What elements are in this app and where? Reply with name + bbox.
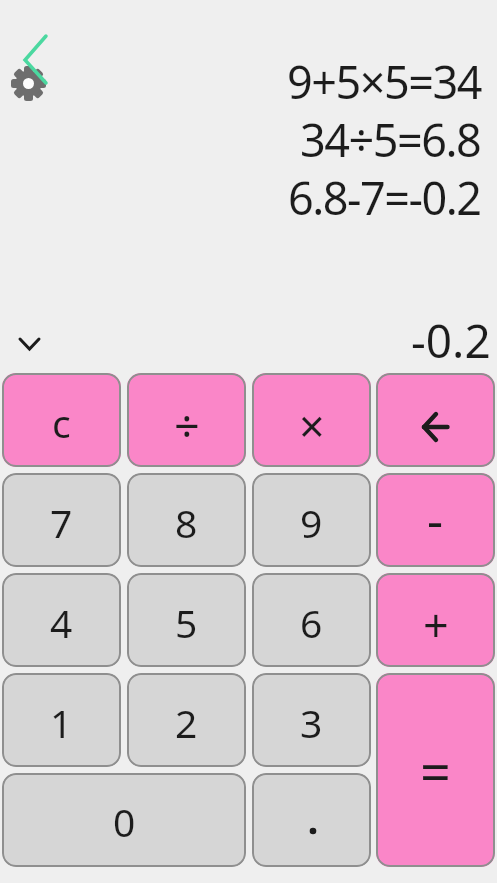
button[interactable]: × bbox=[252, 373, 371, 467]
staticText: 3 bbox=[300, 696, 323, 749]
button[interactable] bbox=[6, 26, 66, 102]
button[interactable] bbox=[252, 773, 371, 867]
staticText: 9 bbox=[300, 496, 323, 549]
button[interactable]: - bbox=[376, 473, 495, 567]
button[interactable]: 5 bbox=[127, 573, 246, 667]
button[interactable] bbox=[376, 373, 495, 467]
button[interactable]: 3 bbox=[252, 673, 371, 767]
button[interactable]: ÷ bbox=[127, 373, 246, 467]
button[interactable]: 7 bbox=[2, 473, 121, 567]
button[interactable] bbox=[10, 330, 50, 360]
button[interactable]: 0 bbox=[2, 773, 246, 867]
staticText: 4 bbox=[50, 596, 73, 649]
button[interactable]: 9 bbox=[252, 473, 371, 567]
button[interactable]: 1 bbox=[2, 673, 121, 767]
staticText: 6 bbox=[300, 596, 323, 649]
staticText: c bbox=[52, 396, 71, 449]
staticText: 7 bbox=[50, 496, 73, 549]
button[interactable]: c bbox=[2, 373, 121, 467]
staticText: 0 bbox=[113, 795, 136, 848]
button[interactable]: 2 bbox=[127, 673, 246, 767]
button[interactable]: 6 bbox=[252, 573, 371, 667]
button[interactable]: = bbox=[376, 673, 495, 867]
staticText: + bbox=[423, 594, 449, 655]
staticText: × bbox=[299, 395, 325, 456]
staticText: = bbox=[420, 734, 451, 808]
staticText: 5 bbox=[175, 596, 198, 649]
button[interactable]: + bbox=[376, 573, 495, 667]
button[interactable]: 8 bbox=[127, 473, 246, 567]
staticText: -0.2 bbox=[411, 309, 491, 372]
staticText: 9+5×5=34 bbox=[287, 51, 481, 112]
staticText: 6.8-7=-0.2 bbox=[288, 167, 481, 228]
staticText: ÷ bbox=[174, 395, 200, 456]
staticText: 1 bbox=[50, 696, 73, 749]
staticText: 2 bbox=[175, 696, 198, 749]
button[interactable]: 4 bbox=[2, 573, 121, 667]
staticText: - bbox=[427, 485, 444, 553]
staticText: 34÷5=6.8 bbox=[300, 109, 481, 170]
staticText: 8 bbox=[175, 496, 198, 549]
